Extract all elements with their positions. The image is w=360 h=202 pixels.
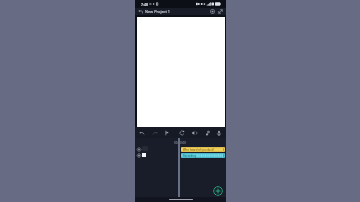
button[interactable]: Add media — [213, 186, 223, 196]
button[interactable]: Undo — [138, 129, 146, 137]
button[interactable]: Voice — [215, 129, 223, 137]
button[interactable]: Toggle track 2 visibility — [137, 154, 141, 157]
button[interactable]: Fullscreen — [217, 8, 224, 15]
button[interactable]: Toggle track 1 visibility — [137, 148, 141, 151]
button[interactable]: Back — [137, 8, 144, 15]
staticText: 00:00:00 — [174, 141, 186, 145]
staticText: Who heard of you do it? — [183, 148, 215, 152]
button[interactable]: Who heard of you do it? — [181, 147, 225, 152]
button[interactable]: Redo — [151, 129, 159, 137]
button[interactable]: Recording — [181, 153, 225, 158]
staticText: Recording — [183, 154, 197, 158]
staticText: 7:48 — [141, 2, 148, 7]
button[interactable]: Rotate — [178, 129, 186, 137]
button[interactable]: Volume — [190, 129, 198, 137]
button[interactable]: Project settings — [209, 8, 216, 15]
button[interactable]: Music — [204, 129, 212, 137]
staticText: New Project 1 — [145, 9, 171, 14]
button[interactable]: Split — [163, 129, 171, 137]
